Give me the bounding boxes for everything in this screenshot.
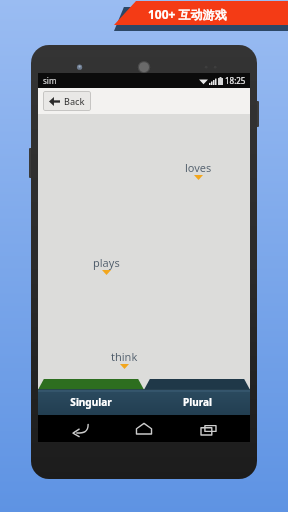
staticText: Back <box>64 95 85 107</box>
button[interactable]: Back <box>43 91 91 111</box>
button[interactable]: Home <box>122 415 166 442</box>
button[interactable]: Singular <box>38 379 144 415</box>
staticText: think <box>111 349 138 364</box>
button[interactable]: Back <box>58 415 102 442</box>
staticText: sim <box>43 75 57 86</box>
staticText: Singular <box>70 395 112 409</box>
button[interactable]: plays <box>93 255 120 275</box>
staticText: Plural <box>183 395 212 409</box>
button[interactable]: loves <box>185 160 212 180</box>
staticText: 18:25 <box>225 75 246 86</box>
staticText: 100+ 互动游戏 <box>148 6 227 22</box>
button[interactable]: think <box>111 349 138 369</box>
button[interactable]: Plural <box>144 379 250 415</box>
button[interactable]: Recents <box>186 415 230 442</box>
staticText: loves <box>185 160 212 175</box>
staticText: plays <box>93 255 120 270</box>
